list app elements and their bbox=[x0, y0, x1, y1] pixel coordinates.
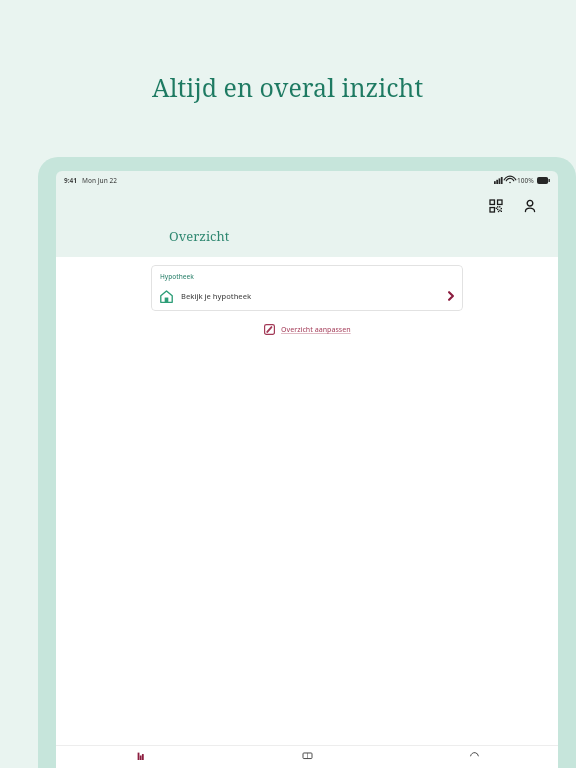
button[interactable]: Hypotheek bbox=[151, 265, 463, 311]
staticText: Mon Jun 22 bbox=[82, 176, 117, 185]
staticText: Overzicht bbox=[169, 227, 230, 245]
button[interactable]: Overzicht aanpassen bbox=[258, 321, 357, 338]
button[interactable]: Profiel bbox=[520, 196, 540, 216]
button[interactable]: Service bbox=[391, 746, 558, 768]
button[interactable]: Financien bbox=[56, 746, 224, 768]
staticText: Bekijk je hypotheek bbox=[181, 291, 252, 301]
staticText: Hypotheek bbox=[160, 272, 194, 281]
button[interactable]: QR code scannen bbox=[486, 196, 506, 216]
staticText: 9:41 bbox=[64, 176, 77, 185]
staticText: Altijd en overal inzicht bbox=[152, 70, 424, 104]
staticText: Overzicht aanpassen bbox=[281, 325, 351, 335]
button[interactable]: Betalen bbox=[224, 746, 391, 768]
staticText: 100% bbox=[517, 176, 534, 185]
